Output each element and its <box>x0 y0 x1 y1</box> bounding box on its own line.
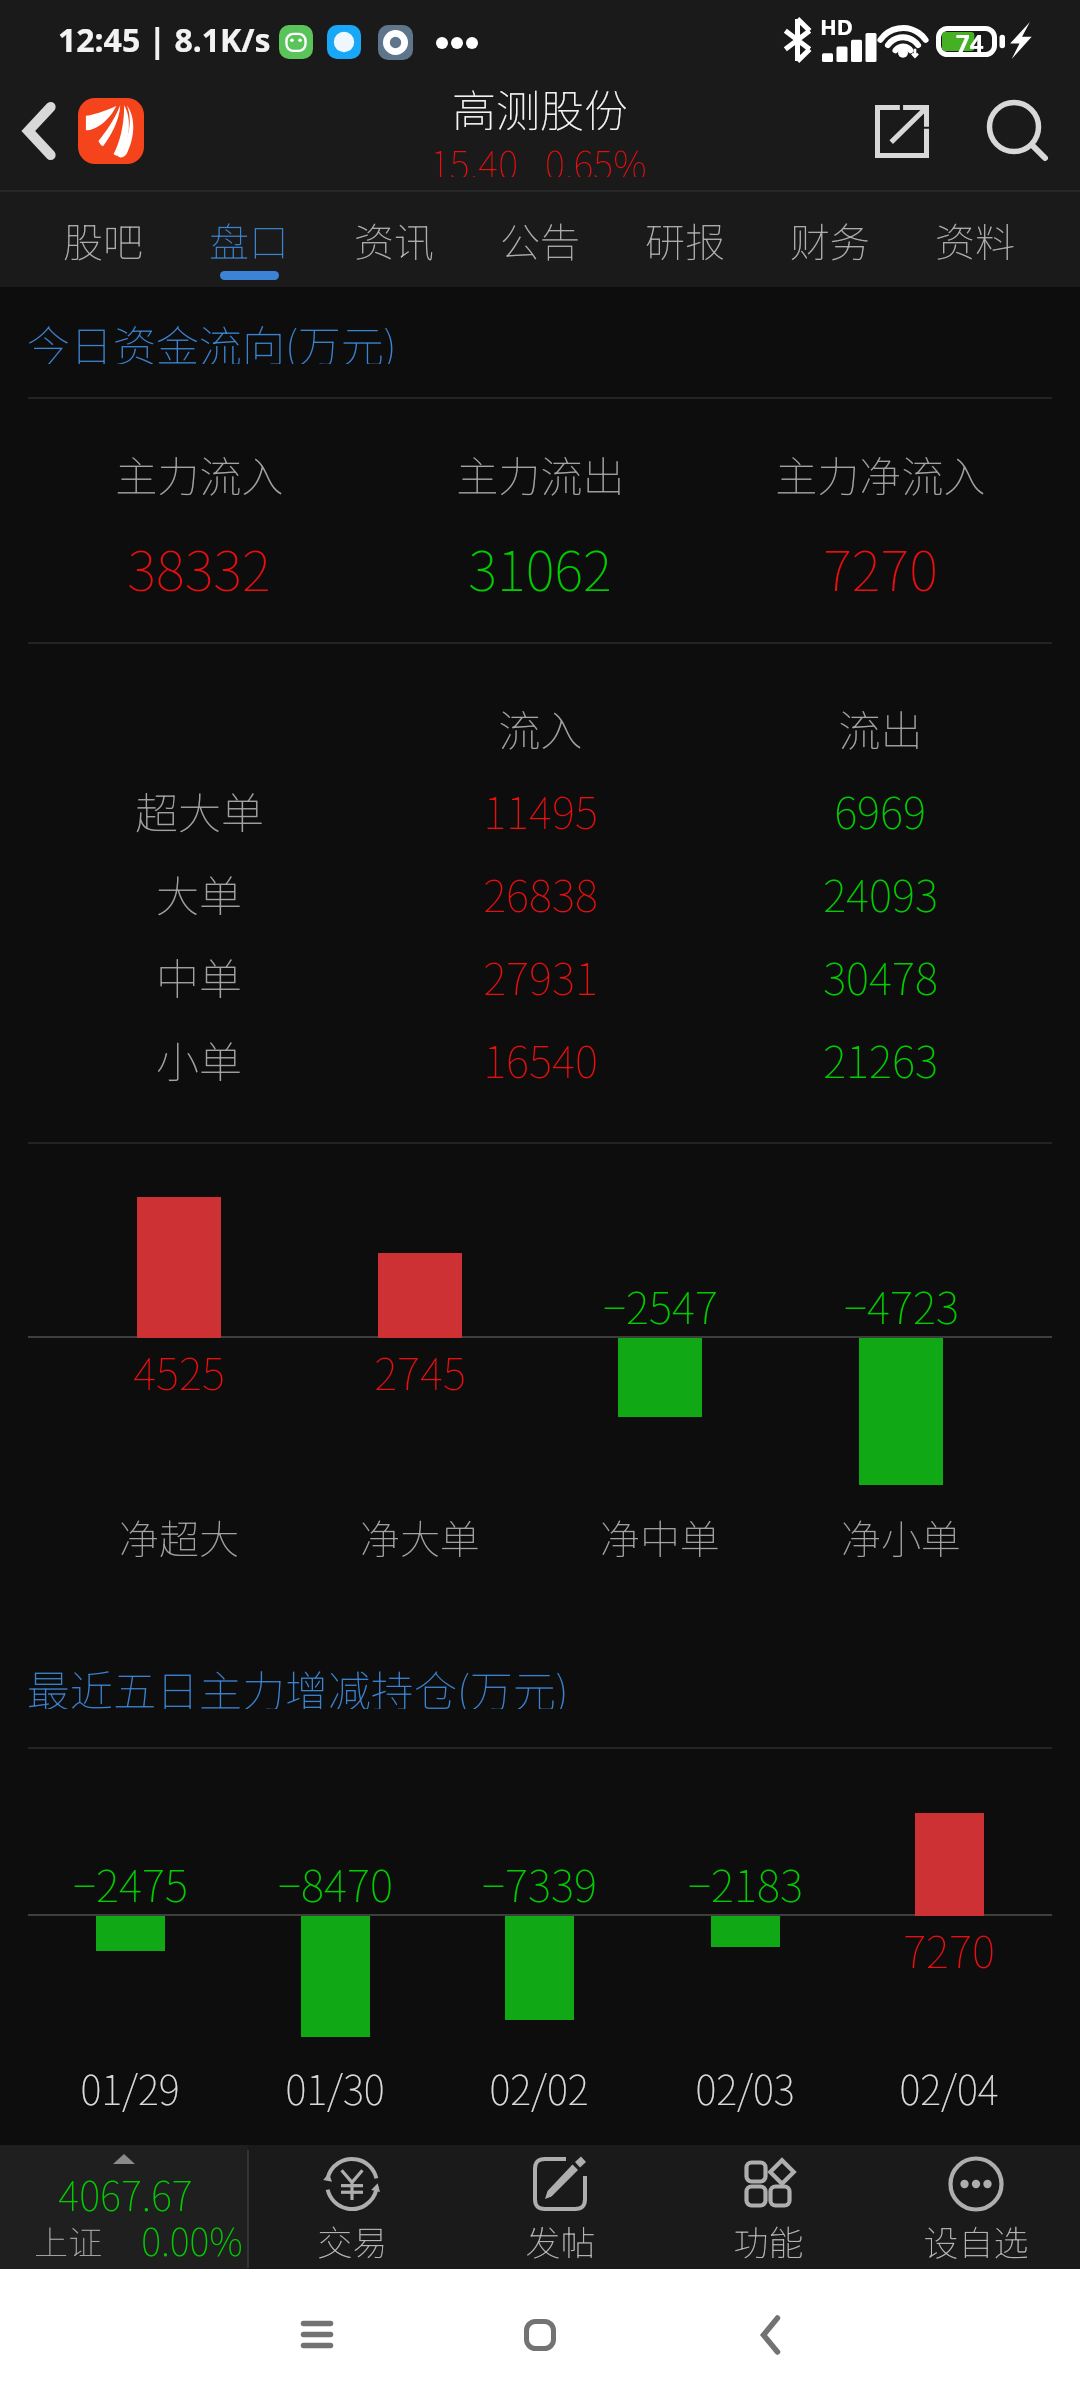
staticText: 最近五日主力增减持仓(万元) <box>27 1657 569 1709</box>
staticText: 7270 <box>903 1917 995 1981</box>
staticText: 02/04 <box>899 2059 999 2117</box>
staticText: 中单 <box>156 945 242 1007</box>
button[interactable]: 发帖 <box>457 2145 663 2272</box>
staticText: 上证 <box>34 2216 102 2265</box>
staticText: 26838 <box>483 861 598 925</box>
button[interactable]: Back <box>8 88 72 174</box>
button[interactable]: 股吧 <box>33 192 173 284</box>
staticText: 资料 <box>935 211 1015 269</box>
staticText: 盘口 <box>209 211 289 269</box>
staticText: 发帖 <box>525 2215 596 2261</box>
staticText: 主力流出 <box>456 443 625 504</box>
staticText: 02/02 <box>489 2059 589 2117</box>
staticText: 流入 <box>498 697 583 758</box>
staticText: 流出 <box>838 697 923 758</box>
staticText: 资讯 <box>354 211 434 269</box>
staticText: 31062 <box>468 527 612 607</box>
button[interactable]: 资讯 <box>324 192 464 284</box>
button[interactable]: Back <box>690 2269 850 2400</box>
button[interactable]: 研报 <box>615 192 755 284</box>
button[interactable]: 公告 <box>470 192 610 284</box>
staticText: 超大单 <box>135 779 264 841</box>
staticText: 4525 <box>133 1339 225 1403</box>
staticText: −7339 <box>482 1851 597 1915</box>
staticText: 74 <box>956 26 984 57</box>
staticText: 公告 <box>500 211 580 269</box>
button[interactable]: 盘口 <box>179 192 319 284</box>
staticText: 净超大 <box>119 1508 239 1566</box>
button[interactable]: 功能 <box>665 2145 871 2272</box>
staticText: 今日资金流向(万元) <box>27 312 397 364</box>
staticText: 12:45 | 8.1K/s <box>58 18 271 62</box>
staticText: 2745 <box>374 1339 466 1403</box>
staticText: 股吧 <box>63 211 143 269</box>
staticText: 7270 <box>823 527 938 607</box>
staticText: −2475 <box>73 1851 188 1915</box>
button[interactable] <box>0 2145 248 2272</box>
button[interactable]: Open app home <box>78 98 144 164</box>
button[interactable]: Share <box>860 88 944 174</box>
staticText: 16540 <box>483 1027 598 1091</box>
staticText: 01/30 <box>285 2059 385 2117</box>
staticText: 11495 <box>483 778 598 842</box>
staticText: 15.40 <box>430 135 518 177</box>
staticText: 财务 <box>790 211 870 269</box>
staticText: 功能 <box>733 2215 804 2261</box>
staticText: 38332 <box>127 527 271 607</box>
staticText: 小单 <box>156 1028 242 1090</box>
button[interactable]: 设自选 <box>873 2145 1079 2272</box>
button[interactable]: Home <box>460 2269 620 2400</box>
staticText: HD <box>820 11 853 41</box>
staticText: 设自选 <box>923 2215 1029 2261</box>
staticText: 0.65% <box>545 135 647 177</box>
button[interactable]: 资料 <box>905 192 1045 284</box>
staticText: 21263 <box>823 1027 938 1091</box>
staticText: 6969 <box>834 778 926 842</box>
staticText: 02/03 <box>695 2059 795 2117</box>
staticText: 主力净流入 <box>775 443 986 504</box>
button[interactable]: Recents <box>237 2269 397 2400</box>
staticText: 大单 <box>156 862 242 924</box>
staticText: 净大单 <box>360 1508 480 1566</box>
staticText: 24093 <box>823 861 938 925</box>
staticText: −4723 <box>844 1273 959 1337</box>
button[interactable]: Search <box>970 88 1066 174</box>
staticText: 27931 <box>483 944 598 1008</box>
button[interactable]: 交易 <box>249 2145 455 2272</box>
staticText: −2183 <box>688 1851 803 1915</box>
staticText: 净小单 <box>841 1508 961 1566</box>
staticText: 高测股份 <box>452 76 628 140</box>
staticText: −2547 <box>603 1273 718 1337</box>
staticText: 交易 <box>317 2215 388 2261</box>
staticText: 4067.67 <box>58 2165 193 2223</box>
staticText: 研报 <box>645 211 725 269</box>
staticText: 0.00% <box>141 2212 243 2267</box>
button[interactable]: 财务 <box>760 192 900 284</box>
staticText: 主力流入 <box>115 443 284 504</box>
staticText: 净中单 <box>600 1508 720 1566</box>
staticText: 30478 <box>823 944 938 1008</box>
staticText: −8470 <box>278 1851 393 1915</box>
staticText: 01/29 <box>80 2059 180 2117</box>
